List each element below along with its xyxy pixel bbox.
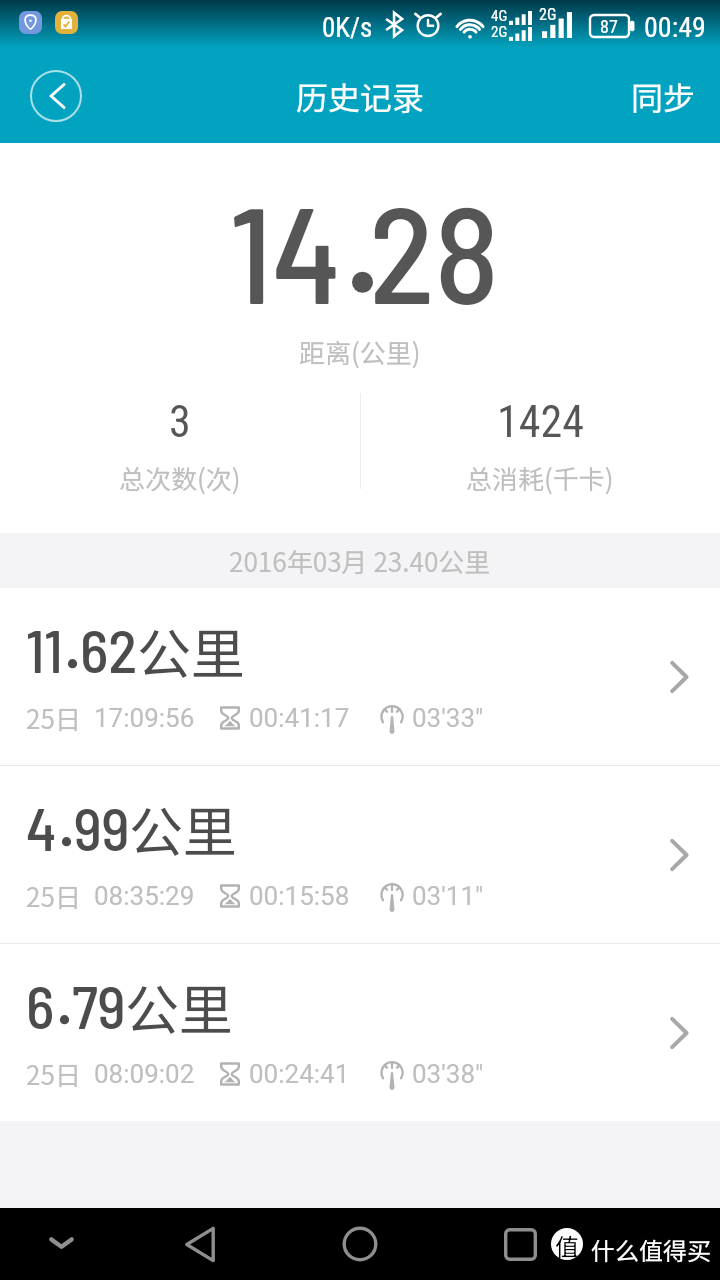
button[interactable]: Recent apps [496,1220,544,1268]
staticText: 08:09:02 [94,1059,195,1089]
staticText: 历史记录 [296,73,425,119]
button[interactable]: 4 [0,766,720,943]
staticText: 28 [369,168,500,331]
button[interactable]: Back [176,1220,224,1268]
staticText: 公里 [125,967,233,1045]
staticText: 6 [26,969,55,1041]
staticText: 62 [80,613,138,685]
staticText: 0K/s [322,12,373,44]
staticText: 00:15:58 [249,881,350,911]
staticText: 4 [26,791,57,863]
staticText: 17:09:56 [94,703,195,733]
staticText: 总消耗(千卡) [466,459,614,497]
staticText: 11 [26,613,63,685]
staticText: 03'11" [412,881,484,911]
staticText: 00:49 [644,11,706,44]
staticText: 什么值得买 [591,1232,711,1267]
staticText: 2016年03月 23.40公里 [229,542,491,580]
staticText: 03'33" [412,703,484,733]
staticText: 03'38" [412,1059,484,1089]
staticText: 99 [74,791,130,863]
button[interactable]: 11 [0,588,720,765]
staticText: 2G [491,23,508,41]
staticText: 4G [491,7,508,25]
button[interactable]: Back [29,69,83,123]
staticText: 3 [169,396,191,448]
button[interactable]: 同步 [631,48,720,143]
staticText: 1424 [497,396,584,448]
button[interactable]: Hide navigation bar [41,1223,81,1263]
staticText: 25日 [26,699,81,737]
staticText: 08:35:29 [94,881,195,911]
staticText: 25日 [26,1055,81,1093]
staticText: 总次数(次) [119,459,241,497]
staticText: 25日 [26,877,81,915]
staticText: 公里 [129,789,237,867]
staticText: 87 [600,16,618,37]
staticText: 距离(公里) [299,333,421,371]
staticText: 00:24:41 [249,1059,350,1089]
staticText: 79 [72,969,126,1041]
staticText: 2G [539,5,557,24]
button[interactable]: 6 [0,944,720,1121]
button[interactable]: Home [336,1220,384,1268]
staticText: 00:41:17 [249,703,350,733]
staticText: 值 [555,1228,579,1260]
staticText: 公里 [137,611,245,689]
staticText: 14 [230,168,341,331]
staticText: 同步 [631,73,696,119]
